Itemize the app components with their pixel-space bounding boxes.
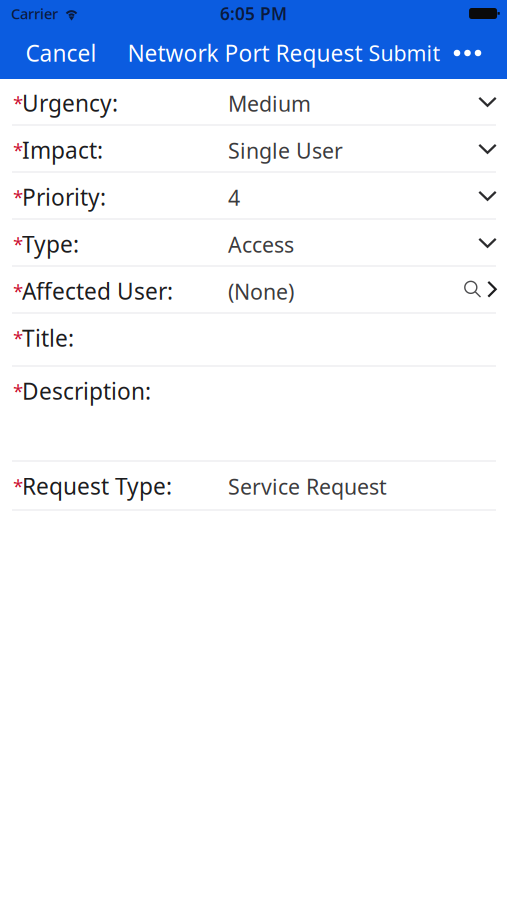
- staticText: *: [13, 138, 23, 162]
- staticText: Submit: [368, 39, 440, 67]
- staticText: Medium: [228, 89, 311, 118]
- staticText: Cancel: [25, 38, 96, 68]
- button[interactable]: *: [0, 173, 507, 220]
- staticText: Access: [228, 230, 294, 259]
- staticText: *: [13, 279, 23, 303]
- staticText: Impact:: [22, 135, 103, 165]
- staticText: *: [13, 474, 23, 498]
- staticText: Description:: [22, 376, 151, 406]
- staticText: Request Type:: [22, 471, 172, 501]
- staticText: Priority:: [22, 182, 106, 212]
- button[interactable]: *: [0, 267, 507, 314]
- staticText: *: [13, 185, 23, 209]
- staticText: Single User: [228, 136, 343, 165]
- button[interactable]: Submit: [362, 27, 446, 79]
- staticText: Affected User:: [22, 276, 173, 306]
- staticText: (None): [228, 277, 294, 306]
- button[interactable]: *: [0, 79, 507, 126]
- staticText: *: [13, 326, 23, 350]
- staticText: 4: [228, 183, 240, 212]
- staticText: 6:05 PM: [220, 2, 287, 25]
- button[interactable]: *: [0, 462, 507, 511]
- button[interactable]: *: [0, 314, 507, 367]
- button[interactable]: Cancel: [11, 27, 110, 79]
- button[interactable]: *: [0, 220, 507, 267]
- staticText: *: [13, 91, 23, 115]
- staticText: Service Request: [228, 472, 387, 501]
- staticText: *: [13, 232, 23, 256]
- staticText: Carrier: [11, 4, 58, 23]
- staticText: Title:: [22, 323, 74, 353]
- staticText: Urgency:: [22, 88, 118, 118]
- staticText: Network Port Request: [127, 38, 362, 68]
- button[interactable]: More options: [446, 27, 489, 79]
- button[interactable]: *: [0, 367, 507, 462]
- staticText: *: [13, 379, 23, 403]
- button[interactable]: *: [0, 126, 507, 173]
- staticText: Type:: [22, 229, 79, 259]
